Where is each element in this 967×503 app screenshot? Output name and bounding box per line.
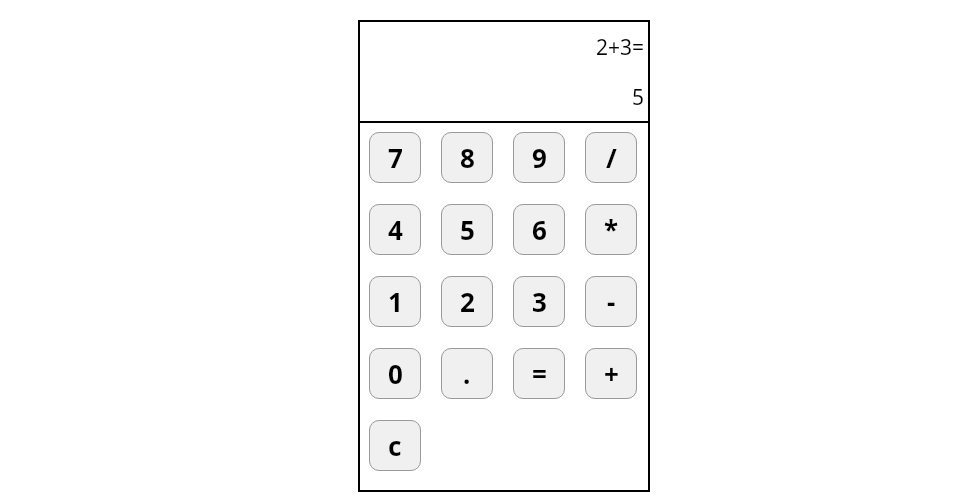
button[interactable]: 4 [369,204,421,255]
staticText: = [532,356,547,391]
staticText: 5 [632,83,645,112]
staticText: 0 [388,356,403,391]
staticText: * [604,212,619,247]
staticText: 3 [532,284,547,319]
button[interactable]: 2 [441,276,493,327]
staticText: 5 [460,212,475,247]
button[interactable]: 7 [369,132,421,183]
button[interactable]: - [585,276,637,327]
button[interactable]: * [585,204,637,255]
staticText: 1 [388,284,403,319]
staticText: - [607,284,616,319]
button[interactable]: / [585,132,637,183]
staticText: 2+3= [596,33,645,62]
button[interactable]: 5 [441,204,493,255]
button[interactable]: . [441,348,493,399]
button[interactable]: c [369,420,421,471]
staticText: 7 [388,140,403,175]
staticText: 8 [460,140,475,175]
staticText: 4 [388,212,403,247]
button[interactable]: + [585,348,637,399]
button[interactable]: 3 [513,276,565,327]
staticText: 6 [532,212,547,247]
button[interactable]: = [513,348,565,399]
button[interactable]: 6 [513,204,565,255]
staticText: / [606,140,617,175]
button[interactable]: 8 [441,132,493,183]
staticText: c [388,428,402,463]
staticText: + [604,356,619,391]
button[interactable]: 0 [369,348,421,399]
staticText: 9 [532,140,547,175]
button[interactable]: 1 [369,276,421,327]
staticText: . [463,356,471,391]
button[interactable]: 9 [513,132,565,183]
staticText: 2 [460,284,475,319]
